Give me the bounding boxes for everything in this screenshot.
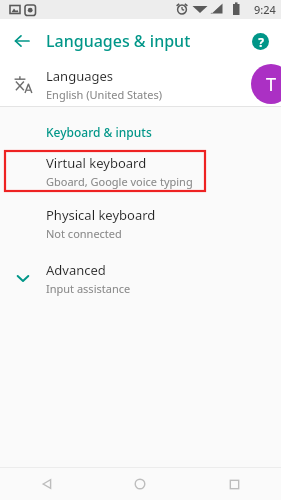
button[interactable]: Back xyxy=(6,25,38,57)
button[interactable]: Recent apps xyxy=(187,468,281,500)
staticText: ? xyxy=(258,34,264,50)
button[interactable]: Home xyxy=(93,468,187,500)
staticText: English (United States) xyxy=(46,87,162,102)
staticText: Not connected xyxy=(46,226,122,241)
button[interactable]: Help xyxy=(245,26,275,56)
staticText: Languages xyxy=(46,67,114,85)
staticText: 9:24 xyxy=(254,2,276,17)
button[interactable]: Advanced xyxy=(0,259,281,297)
staticText: T xyxy=(266,72,277,97)
button[interactable]: Back xyxy=(0,468,93,500)
staticText: Input assistance xyxy=(46,281,131,296)
staticText: Keyboard & inputs xyxy=(46,124,152,140)
button[interactable]: Virtual keyboard xyxy=(0,151,281,191)
button[interactable]: Physical keyboard xyxy=(0,204,281,242)
staticText: Languages & input xyxy=(46,30,191,52)
button[interactable]: Languages xyxy=(0,62,281,106)
staticText: Physical keyboard xyxy=(46,206,156,224)
staticText: Advanced xyxy=(46,261,106,279)
staticText: Gboard, Google voice typing xyxy=(46,174,193,189)
staticText: Virtual keyboard xyxy=(46,154,147,172)
button[interactable]: Account xyxy=(251,64,281,104)
